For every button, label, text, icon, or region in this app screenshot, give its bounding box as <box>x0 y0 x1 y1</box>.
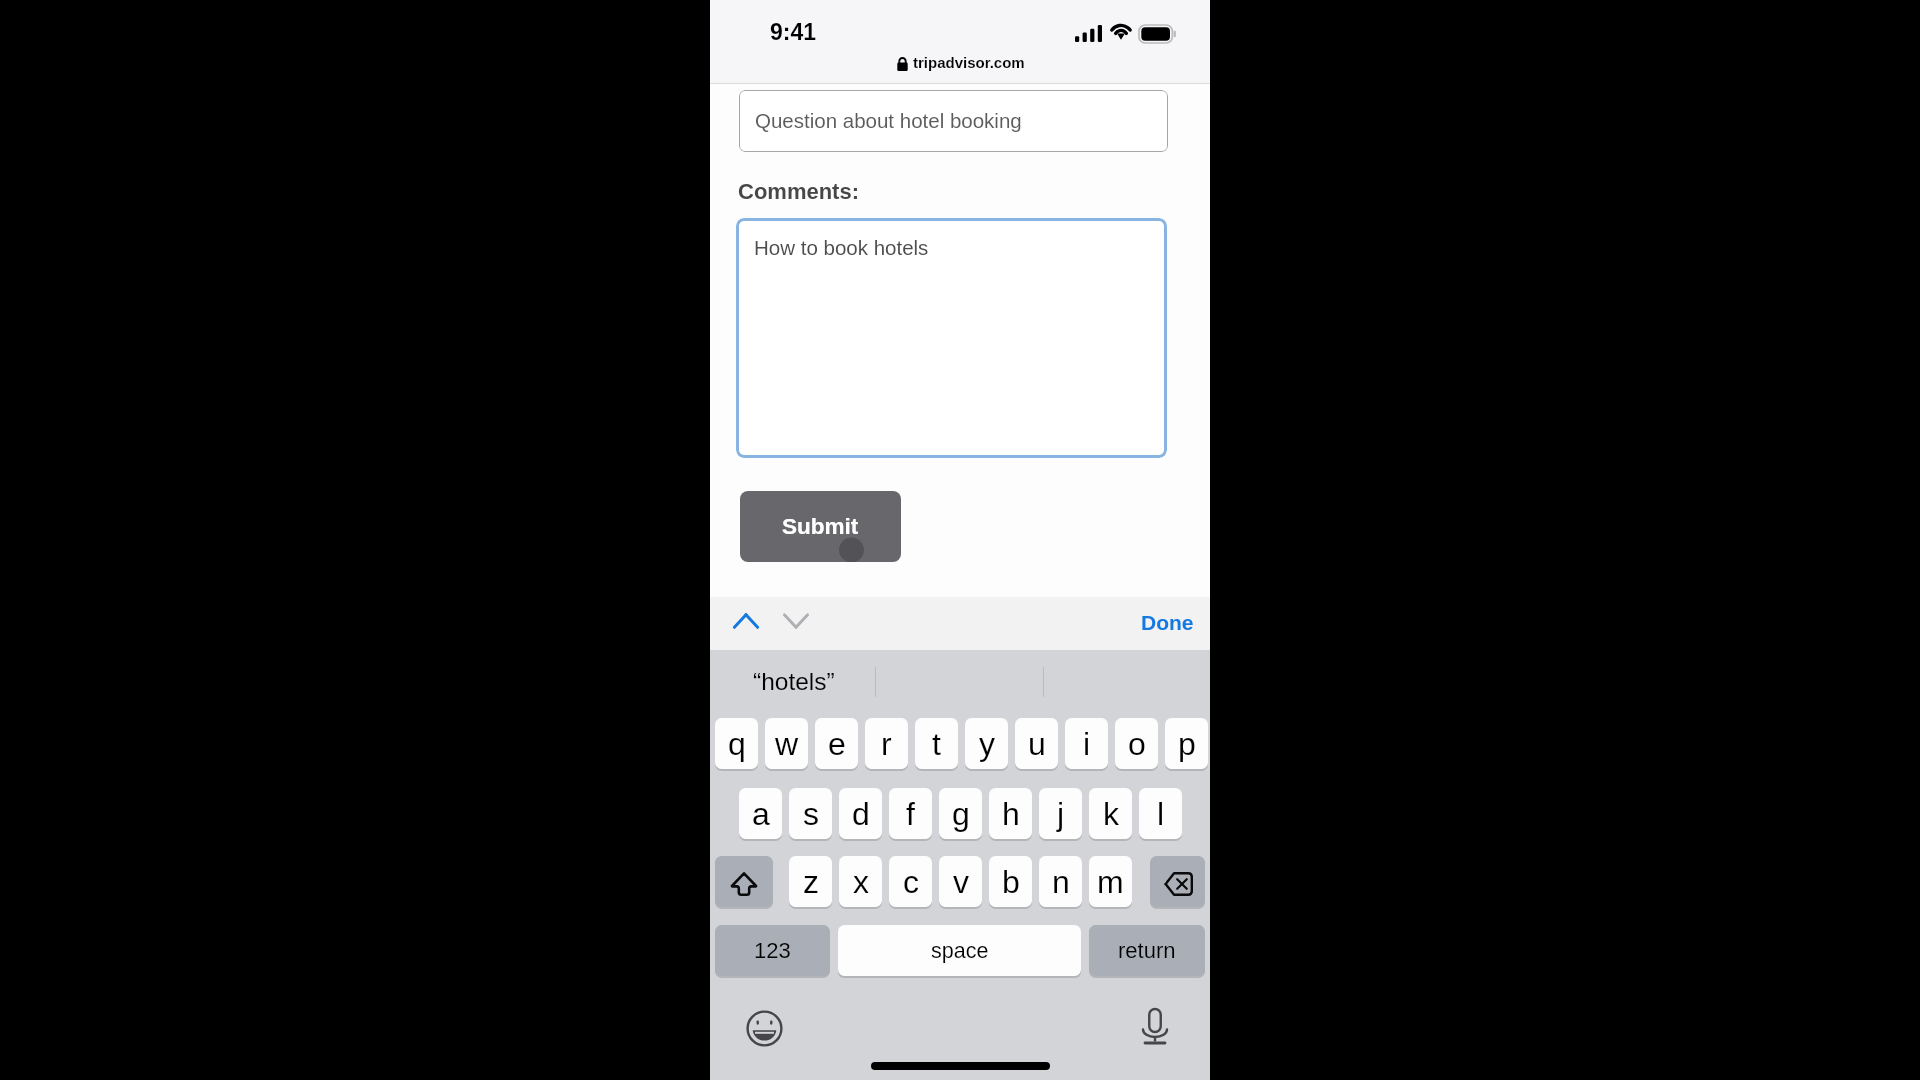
staticText: Done <box>1141 611 1194 634</box>
staticText: j <box>1057 796 1065 832</box>
staticText: g <box>952 796 970 832</box>
staticText: n <box>1052 864 1070 900</box>
staticText: z <box>803 864 819 900</box>
button[interactable]: g <box>939 788 982 839</box>
button[interactable]: e <box>815 718 858 769</box>
staticText: x <box>853 864 869 900</box>
staticText: h <box>1002 796 1020 832</box>
staticText: tripadvisor.com <box>913 54 1025 71</box>
staticText: u <box>1028 726 1046 762</box>
button[interactable]: b <box>989 856 1032 907</box>
button[interactable]: space <box>838 925 1081 976</box>
button[interactable]: q <box>715 718 758 769</box>
staticText: a <box>752 796 770 832</box>
button[interactable]: How to book hotels <box>736 218 1167 458</box>
button[interactable]: Previous field <box>724 599 768 643</box>
button[interactable]: k <box>1089 788 1132 839</box>
button[interactable]: s <box>789 788 832 839</box>
staticText: e <box>828 726 846 762</box>
staticText: c <box>903 864 919 900</box>
button[interactable]: c <box>889 856 932 907</box>
staticText: i <box>1083 726 1091 762</box>
staticText: l <box>1157 796 1165 832</box>
button[interactable]: x <box>839 856 882 907</box>
button[interactable]: r <box>865 718 908 769</box>
button[interactable]: o <box>1115 718 1158 769</box>
staticText: k <box>1103 796 1119 832</box>
staticText: t <box>932 726 941 762</box>
staticText: d <box>852 796 870 832</box>
staticText: Comments: <box>738 179 860 204</box>
button[interactable]: 123 <box>715 925 830 976</box>
button[interactable]: p <box>1165 718 1208 769</box>
staticText: 9:41 <box>770 19 817 45</box>
staticText: “hotels” <box>753 668 835 695</box>
staticText: w <box>775 726 799 762</box>
staticText: space <box>931 939 989 963</box>
staticText: v <box>953 864 969 900</box>
staticText: o <box>1128 726 1146 762</box>
button[interactable]: f <box>889 788 932 839</box>
button[interactable]: l <box>1139 788 1182 839</box>
button[interactable]: Done <box>1133 605 1202 640</box>
staticText: f <box>906 796 915 832</box>
button[interactable]: m <box>1089 856 1132 907</box>
button[interactable]: return <box>1089 925 1205 976</box>
button[interactable]: j <box>1039 788 1082 839</box>
button[interactable]: h <box>989 788 1032 839</box>
button[interactable]: u <box>1015 718 1058 769</box>
button[interactable]: i <box>1065 718 1108 769</box>
staticText: p <box>1178 726 1196 762</box>
button[interactable]: Next field <box>774 599 818 643</box>
button[interactable]: t <box>915 718 958 769</box>
button[interactable]: Emoji keyboard <box>746 1010 783 1047</box>
staticText: m <box>1097 864 1124 900</box>
button[interactable]: Submit <box>740 491 901 562</box>
button[interactable]: a <box>739 788 782 839</box>
button[interactable]: Shift <box>715 856 773 907</box>
button[interactable]: n <box>1039 856 1082 907</box>
button[interactable]: Backspace <box>1150 856 1205 907</box>
button[interactable]: w <box>765 718 808 769</box>
button[interactable]: d <box>839 788 882 839</box>
staticText: How to book hotels <box>754 236 929 259</box>
staticText: Submit <box>782 514 859 539</box>
staticText: y <box>979 726 995 762</box>
button[interactable]: v <box>939 856 982 907</box>
button[interactable]: y <box>965 718 1008 769</box>
staticText: q <box>728 726 746 762</box>
staticText: b <box>1002 864 1020 900</box>
staticText: Question about hotel booking <box>755 109 1022 132</box>
staticText: r <box>881 726 892 762</box>
button[interactable]: z <box>789 856 832 907</box>
staticText: s <box>803 796 819 832</box>
staticText: return <box>1118 938 1176 963</box>
button[interactable]: Dictation <box>1142 1008 1168 1047</box>
staticText: 123 <box>754 938 791 963</box>
button[interactable]: Question about hotel booking <box>739 90 1168 152</box>
